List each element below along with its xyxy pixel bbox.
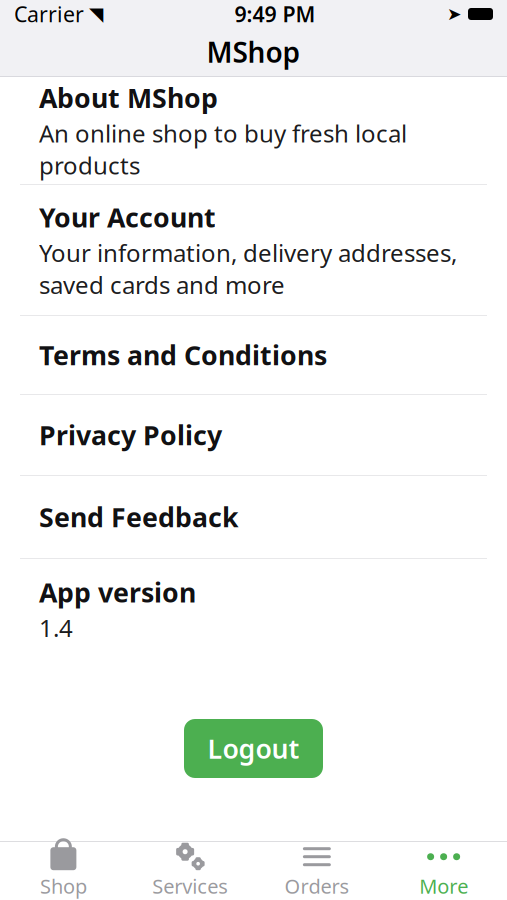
button[interactable]: Services (127, 837, 254, 900)
button[interactable]: Send Feedback (0, 476, 507, 558)
button[interactable]: App version (0, 559, 507, 659)
staticText: Carrier (14, 0, 84, 28)
button[interactable]: Your Account (0, 185, 507, 315)
button[interactable]: More (380, 837, 507, 900)
staticText: Your Account (39, 199, 216, 235)
staticText: 1.4 (39, 612, 73, 644)
button[interactable]: Logout (184, 719, 323, 778)
staticText: More (419, 873, 468, 899)
staticText: 9:49 PM (234, 0, 315, 28)
staticText: Privacy Policy (39, 417, 222, 453)
staticText: Logout (207, 731, 299, 766)
button[interactable]: Shop (0, 837, 127, 900)
button[interactable]: Privacy Policy (0, 395, 507, 475)
staticText: MShop (206, 33, 300, 71)
staticText: An online shop to buy fresh local produc… (39, 117, 407, 181)
staticText: Terms and Conditions (39, 337, 327, 373)
staticText: App version (39, 574, 196, 610)
staticText: ➤ (447, 4, 462, 24)
staticText: ◥ (89, 3, 103, 25)
staticText: Services (152, 873, 228, 899)
staticText: Your information, delivery addresses, sa… (39, 237, 457, 300)
staticText: Send Feedback (39, 499, 239, 535)
staticText: Shop (40, 873, 87, 899)
staticText: Orders (284, 873, 349, 899)
staticText: About MShop (39, 80, 218, 115)
button[interactable]: Orders (253, 837, 380, 900)
button[interactable]: Terms and Conditions (0, 316, 507, 394)
button[interactable]: About MShop (0, 77, 507, 184)
